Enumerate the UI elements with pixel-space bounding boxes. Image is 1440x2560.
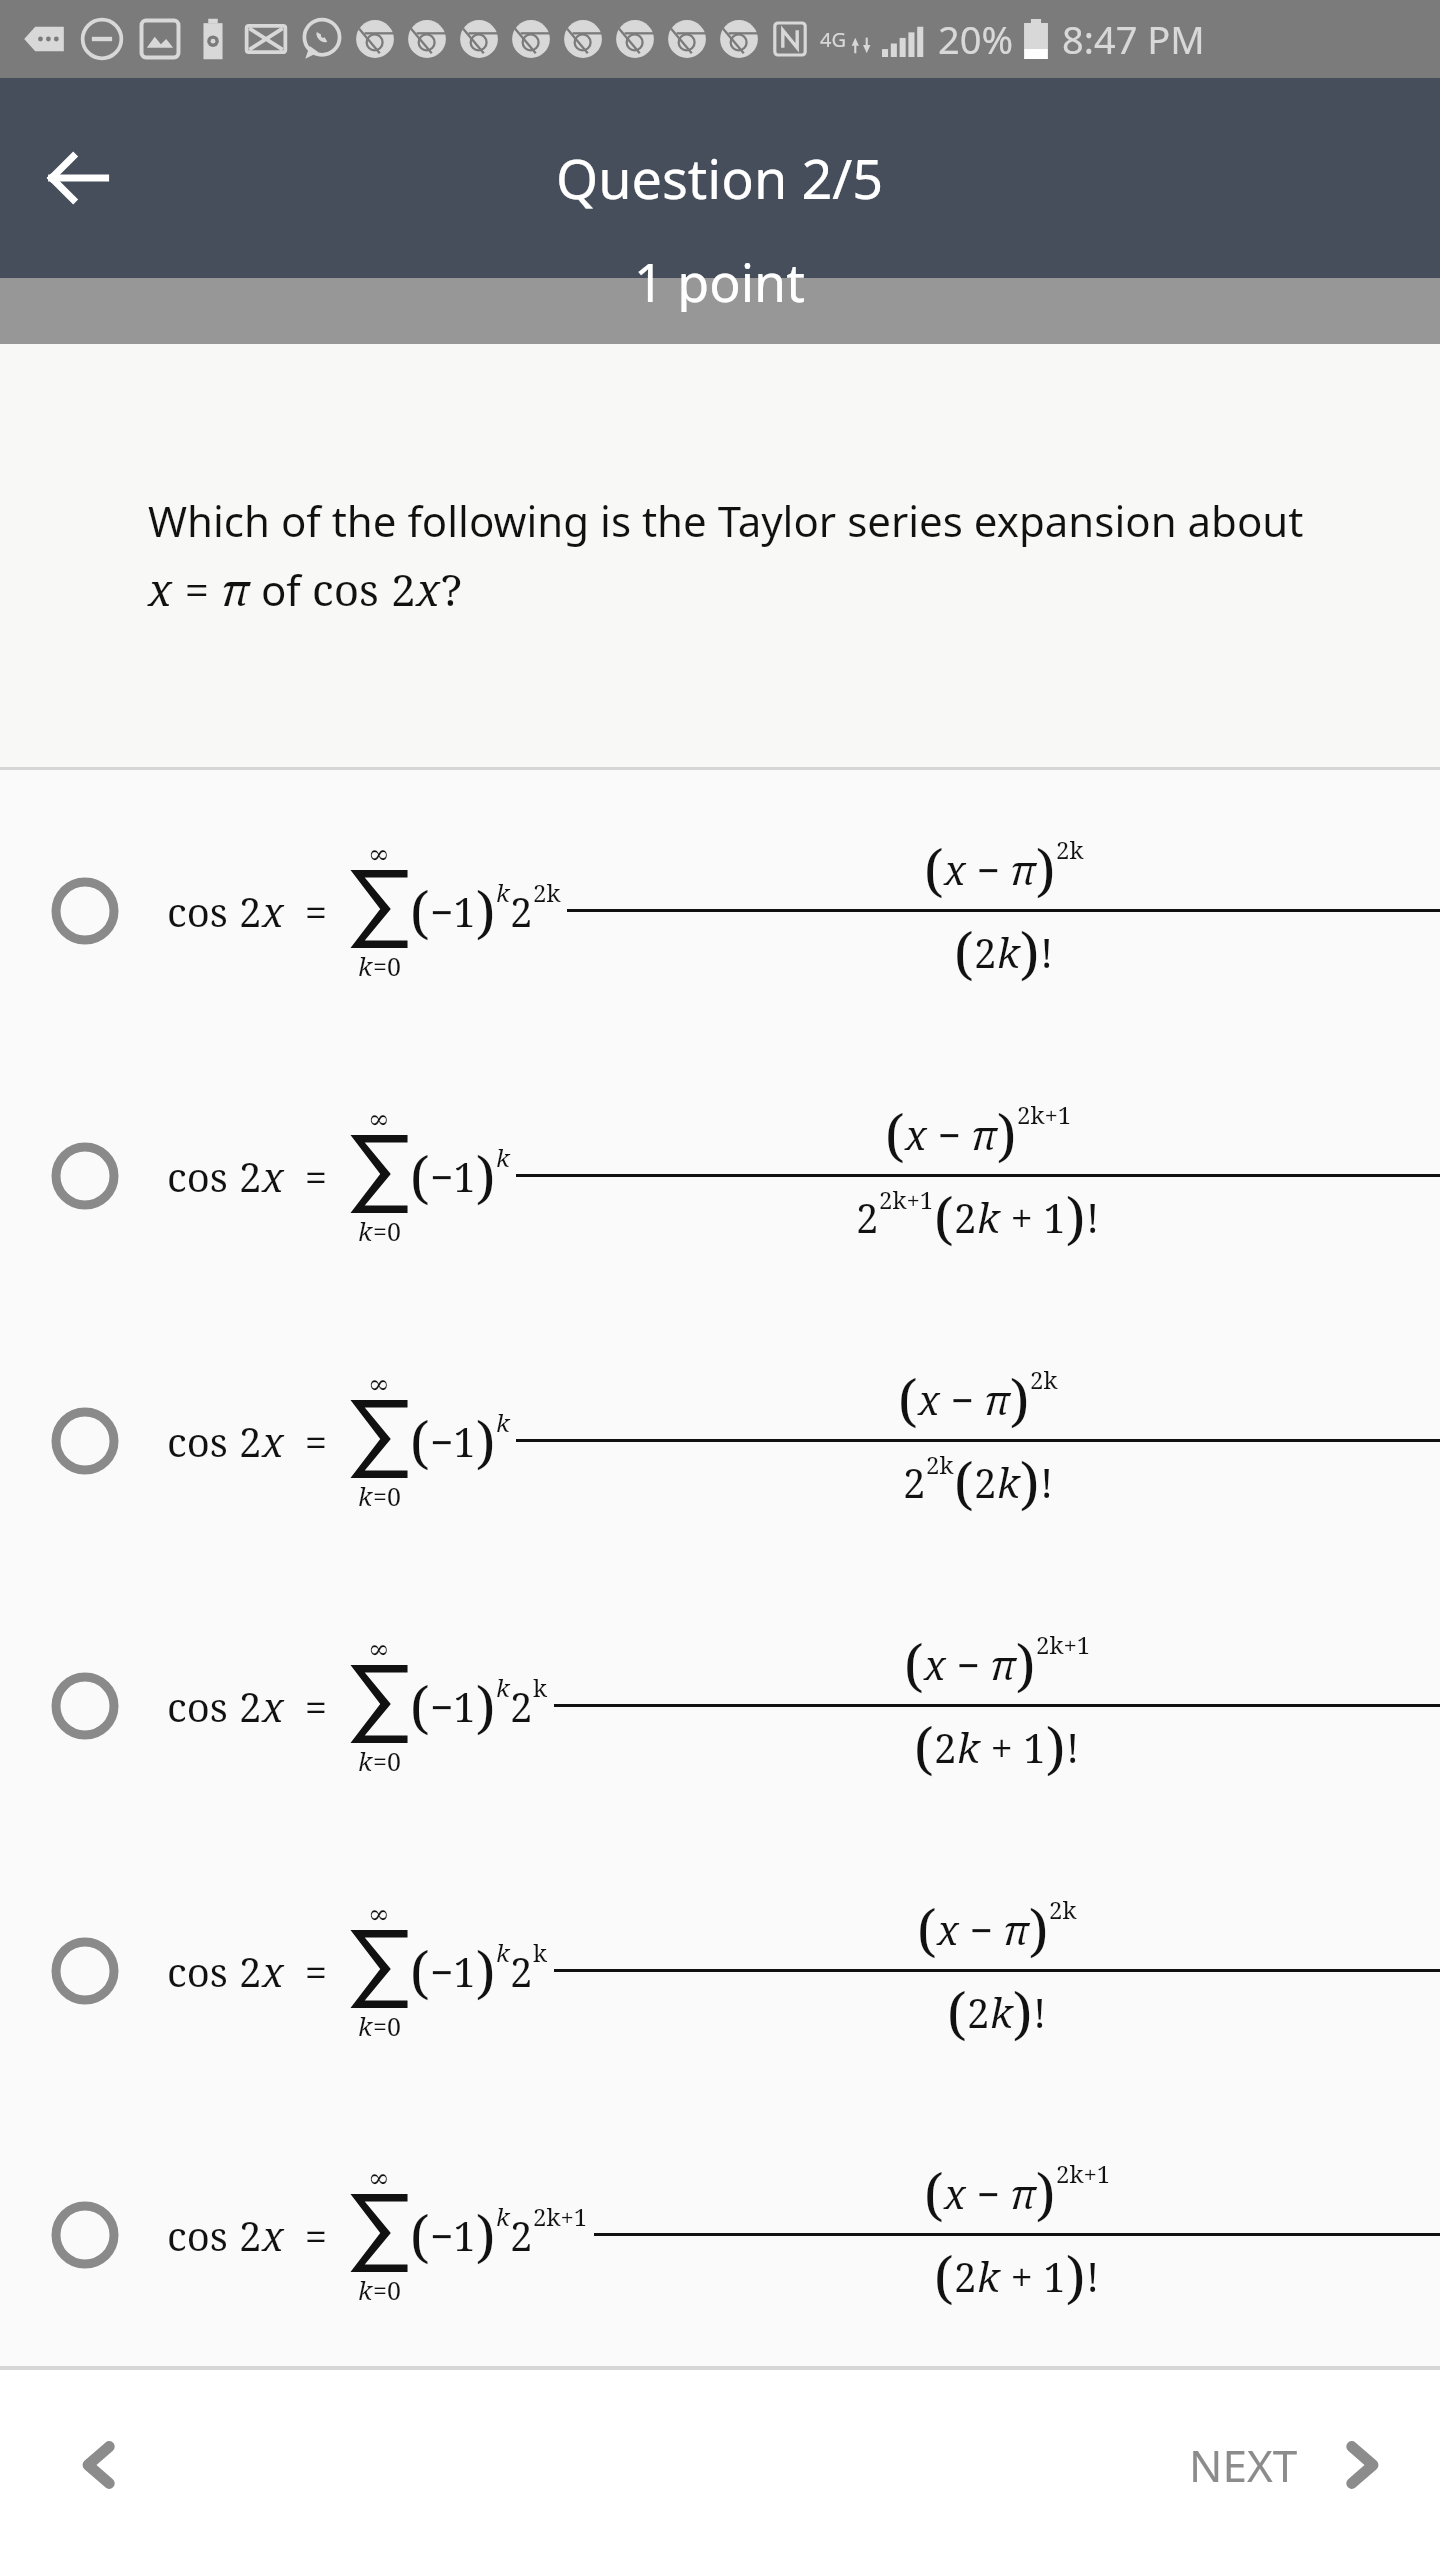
staticText: ) bbox=[1046, 1709, 1066, 1785]
staticText: k bbox=[997, 925, 1020, 979]
staticText: cos bbox=[167, 884, 239, 938]
staticText: k bbox=[496, 1671, 510, 1704]
staticText: − bbox=[946, 1637, 990, 1691]
staticText: Question 2/5 bbox=[556, 141, 884, 215]
staticText: ) bbox=[1066, 2238, 1086, 2314]
staticText: x bbox=[262, 2208, 284, 2262]
button[interactable]: Option 3 bbox=[0, 1308, 1440, 1573]
staticText: =0 bbox=[373, 2273, 401, 2307]
staticText: 4G bbox=[820, 26, 846, 53]
staticText: = bbox=[284, 2208, 348, 2262]
staticText: = bbox=[173, 559, 221, 619]
staticText: k bbox=[990, 1985, 1013, 2039]
staticText: k bbox=[977, 2249, 1000, 2303]
button[interactable]: Option 5 bbox=[0, 1838, 1440, 2103]
staticText: 2k+1 bbox=[1017, 1098, 1072, 1131]
staticText: 2 bbox=[391, 559, 416, 619]
staticText: ! bbox=[1066, 1720, 1080, 1774]
staticText: ( bbox=[934, 1179, 954, 1255]
staticText: = bbox=[284, 1414, 348, 1468]
staticText: k bbox=[358, 1214, 373, 1248]
staticText: 2k bbox=[1056, 833, 1084, 866]
staticText: ( bbox=[904, 1626, 924, 1702]
staticText: = bbox=[284, 884, 348, 938]
button[interactable]: Back bbox=[30, 130, 126, 226]
staticText: cos bbox=[167, 1944, 239, 1998]
staticText: 2 bbox=[856, 1190, 879, 1244]
staticText: k bbox=[997, 1455, 1020, 1509]
staticText: ( bbox=[410, 1138, 430, 1214]
button[interactable]: Option 6 bbox=[0, 2103, 1440, 2366]
staticText: 2 bbox=[954, 2249, 977, 2303]
staticText: k bbox=[496, 1936, 510, 1969]
staticText: ! bbox=[1086, 1190, 1100, 1244]
button[interactable]: NEXT bbox=[1173, 2415, 1400, 2515]
staticText: k bbox=[358, 1744, 373, 1778]
staticText: 2 bbox=[239, 1414, 262, 1468]
staticText: k bbox=[496, 1141, 510, 1174]
staticText: 2k bbox=[926, 1448, 954, 1481]
staticText: ( bbox=[934, 2238, 954, 2314]
staticText: ( bbox=[954, 1444, 974, 1520]
staticText: π bbox=[1010, 842, 1036, 896]
staticText: −1 bbox=[430, 1149, 476, 1203]
staticText: ∞ bbox=[368, 1104, 390, 1134]
button[interactable]: Previous bbox=[50, 2415, 150, 2515]
button[interactable]: Option 2 bbox=[0, 1043, 1440, 1308]
staticText: =0 bbox=[373, 949, 401, 983]
staticText: −1 bbox=[430, 1944, 476, 1998]
staticText: ∞ bbox=[368, 839, 390, 869]
staticText: x bbox=[416, 559, 441, 619]
staticText: k bbox=[358, 2273, 373, 2307]
staticText: ) bbox=[1020, 914, 1040, 990]
staticText: 2k+1 bbox=[1036, 1628, 1091, 1661]
staticText: =0 bbox=[373, 2009, 401, 2043]
staticText: 2k+1 bbox=[1056, 2157, 1111, 2190]
staticText: k bbox=[533, 1671, 548, 1704]
staticText: k bbox=[358, 1479, 373, 1513]
staticText: x bbox=[944, 842, 966, 896]
staticText: 2k bbox=[1049, 1893, 1077, 1926]
staticText: 8:47 PM bbox=[1062, 13, 1205, 65]
staticText: k bbox=[358, 2009, 373, 2043]
staticText: ) bbox=[1016, 1626, 1036, 1702]
staticText: ) bbox=[1010, 1361, 1030, 1437]
staticText: −1 bbox=[430, 1679, 476, 1733]
staticText: cos bbox=[312, 559, 391, 619]
staticText: cos bbox=[167, 2208, 239, 2262]
staticText: π bbox=[984, 1372, 1010, 1426]
staticText: 2 bbox=[239, 1679, 262, 1733]
staticText: ( bbox=[410, 1403, 430, 1479]
staticText: =0 bbox=[373, 1214, 401, 1248]
staticText: = bbox=[284, 1149, 348, 1203]
staticText: 2 bbox=[510, 1679, 533, 1733]
staticText: ! bbox=[1040, 1455, 1054, 1509]
staticText: x bbox=[262, 1944, 284, 1998]
button[interactable]: Option 4 bbox=[0, 1573, 1440, 1838]
staticText: 2 bbox=[954, 1190, 977, 1244]
staticText: cos bbox=[167, 1679, 239, 1733]
staticText: ( bbox=[410, 873, 430, 949]
staticText: =0 bbox=[373, 1744, 401, 1778]
staticText: k bbox=[496, 2200, 510, 2233]
staticText: π bbox=[221, 559, 250, 619]
staticText: ) bbox=[476, 1403, 496, 1479]
staticText: ) bbox=[1036, 831, 1056, 907]
staticText: x bbox=[924, 1637, 946, 1691]
staticText: − bbox=[940, 1372, 984, 1426]
staticText: ( bbox=[410, 1668, 430, 1744]
button[interactable]: Option 1 bbox=[0, 778, 1440, 1043]
staticText: k bbox=[533, 1936, 548, 1969]
staticText: ) bbox=[1036, 2155, 1056, 2231]
staticText: ( bbox=[410, 2197, 430, 2273]
staticText: ( bbox=[924, 2155, 944, 2231]
staticText: ∞ bbox=[368, 1899, 390, 1929]
staticText: ? bbox=[441, 559, 462, 619]
staticText: − bbox=[927, 1107, 971, 1161]
staticText: k bbox=[977, 1190, 1000, 1244]
staticText: ! bbox=[1086, 2249, 1100, 2303]
staticText: ( bbox=[898, 1361, 918, 1437]
staticText: x bbox=[262, 1679, 284, 1733]
staticText: 20% bbox=[938, 13, 1014, 65]
staticText: 2 bbox=[239, 884, 262, 938]
